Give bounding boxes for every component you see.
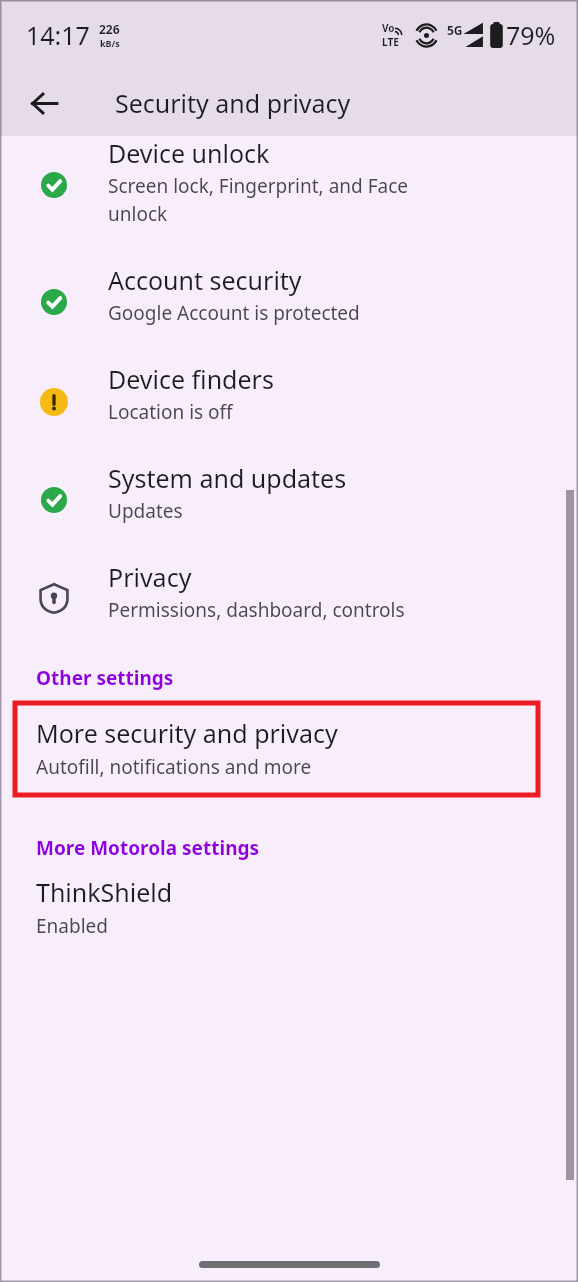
staticText: Device unlock [108, 136, 270, 170]
button[interactable]: System and updates [0, 447, 578, 546]
staticText: 5G [447, 22, 463, 38]
staticText: LTE [382, 35, 399, 49]
button[interactable]: Privacy [0, 546, 578, 643]
staticText: 226 [99, 21, 120, 37]
button[interactable]: Device finders [0, 348, 578, 447]
button[interactable]: Account security [0, 249, 578, 348]
staticText: ThinkShield [36, 875, 173, 909]
staticText: Enabled [36, 913, 108, 939]
button[interactable]: Back [20, 79, 68, 127]
staticText: System and updates [108, 461, 347, 495]
staticText: Location is off [108, 399, 233, 425]
staticText: More Motorola settings [36, 835, 260, 861]
staticText: Google Account is protected [108, 300, 360, 326]
button[interactable]: Device unlock [0, 136, 578, 249]
staticText: Vo [382, 21, 395, 35]
staticText: Autofill, notifications and more [36, 754, 312, 780]
staticText: Privacy [108, 560, 192, 594]
staticText: Account security [108, 263, 302, 297]
staticText: Security and privacy [115, 86, 351, 120]
button[interactable]: ThinkShield [0, 863, 578, 957]
staticText: kB/s [100, 37, 120, 49]
button[interactable]: More security and privacy [15, 703, 538, 795]
staticText: Updates [108, 498, 183, 524]
staticText: 14:17 [26, 18, 90, 52]
staticText: 79% [506, 18, 556, 52]
staticText: Permissions, dashboard, controls [108, 597, 405, 623]
staticText: Screen lock, Fingerprint, and Face unloc… [108, 173, 409, 227]
staticText: More security and privacy [36, 716, 338, 750]
staticText: Other settings [36, 665, 174, 691]
staticText: Device finders [108, 362, 274, 396]
